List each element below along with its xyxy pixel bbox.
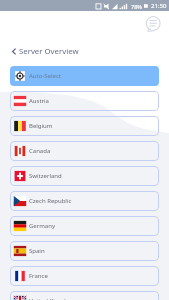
staticText: Austria <box>29 97 49 105</box>
staticText: Server Overview <box>19 46 79 57</box>
staticText: Germany <box>29 222 55 230</box>
staticText: France <box>29 272 48 280</box>
button[interactable]: Czech Republic <box>10 191 159 211</box>
button[interactable]: Auto-Select <box>10 66 159 86</box>
button[interactable]: Austria <box>10 91 159 111</box>
button[interactable]: Spain <box>10 241 159 261</box>
staticText: Canada <box>29 147 51 155</box>
button[interactable]: Germany <box>10 216 159 236</box>
button[interactable]: Switzerland <box>10 166 159 186</box>
staticText: Belgium <box>29 122 53 130</box>
button[interactable]: Support chat <box>145 16 161 32</box>
staticText: 21:50 <box>151 2 167 10</box>
button[interactable]: United Kingdom <box>10 291 159 300</box>
staticText: Switzerland <box>29 172 62 180</box>
staticText: Czech Republic <box>29 197 72 205</box>
staticText: Auto-Select <box>29 72 61 80</box>
button[interactable]: Belgium <box>10 116 159 136</box>
staticText: United Kingdom <box>29 297 76 300</box>
button[interactable]: France <box>10 266 159 286</box>
button[interactable]: Canada <box>10 141 159 161</box>
staticText: 78% <box>131 3 142 10</box>
button[interactable]: Server Overview <box>0 44 169 58</box>
staticText: Spain <box>29 247 45 255</box>
